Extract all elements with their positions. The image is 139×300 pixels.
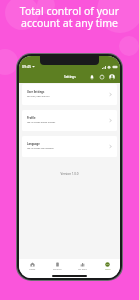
button[interactable]: Profile — [22, 110, 117, 131]
staticText: Language — [27, 142, 40, 146]
staticText: Total control of your account at any tim… — [0, 4, 139, 30]
staticText: Settings — [64, 75, 76, 79]
staticText: Version 1.0.0 — [19, 172, 120, 176]
staticText: Profile — [27, 116, 36, 120]
button[interactable]: Account — [109, 74, 115, 80]
button[interactable]: User Settings — [22, 84, 117, 105]
button[interactable]: Home — [19, 259, 45, 273]
staticText: My Data — [78, 268, 87, 271]
staticText: Services — [53, 268, 62, 271]
staticText: Tap to change the language — [27, 147, 54, 150]
button[interactable]: Notifications — [89, 74, 95, 80]
staticText: 09:45 — [22, 64, 31, 69]
staticText: User Settings — [27, 90, 45, 94]
staticText: Set team, light and font — [27, 95, 50, 98]
button[interactable]: More — [95, 259, 120, 273]
button[interactable]: My Data — [70, 259, 95, 273]
staticText: More — [105, 268, 111, 271]
staticText: Tap to change profile settings — [27, 121, 56, 124]
button[interactable]: Services — [45, 259, 70, 273]
button[interactable]: Refresh — [99, 74, 105, 80]
button[interactable]: Language — [22, 136, 117, 157]
staticText: Home — [29, 268, 36, 271]
